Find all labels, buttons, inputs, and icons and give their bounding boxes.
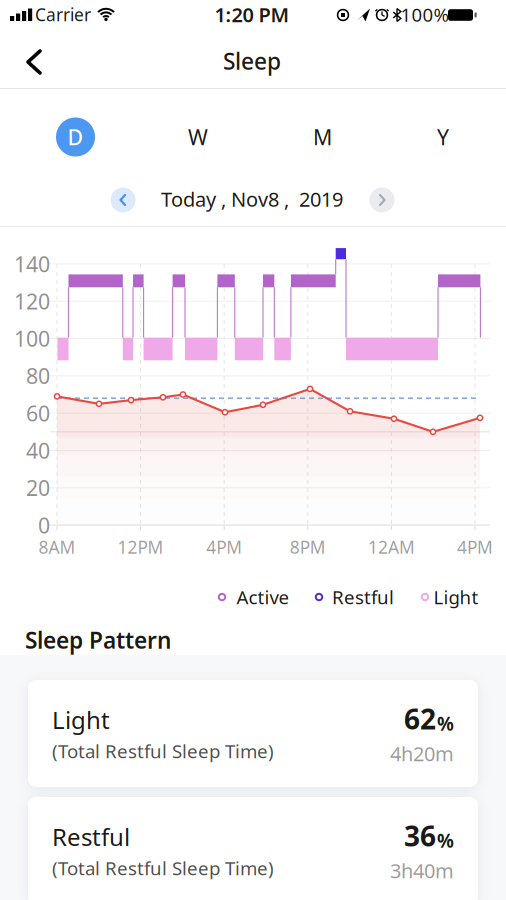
staticText: Carrier (35, 3, 91, 26)
staticText: 100 (14, 324, 50, 353)
staticText: Sleep Pattern (25, 625, 171, 655)
button[interactable]: Light (28, 680, 478, 787)
staticText: 80 (26, 362, 50, 390)
staticText: Light (52, 704, 110, 736)
staticText: 4PM (206, 535, 242, 558)
staticText: (Total Restful Sleep Time) (52, 738, 274, 763)
staticText: 60 (26, 399, 50, 427)
staticText: Active (236, 585, 289, 609)
staticText: Restful (332, 585, 394, 609)
staticText: 62 (404, 700, 436, 737)
button[interactable]: Previous day (110, 187, 135, 212)
button[interactable]: Next day (369, 187, 394, 212)
button[interactable]: Restful (28, 797, 478, 900)
staticText: Today , Nov8 , 2019 (161, 186, 343, 212)
staticText: 4h20m (390, 740, 454, 767)
staticText: 120 (14, 287, 50, 315)
staticText: 36 (404, 817, 436, 854)
staticText: 8AM (38, 535, 75, 558)
staticText: 1:20 PM (214, 1, 289, 28)
staticText: Restful (52, 821, 130, 853)
staticText: 140 (14, 250, 50, 278)
staticText: 12AM (368, 535, 415, 558)
staticText: 100% (400, 2, 449, 27)
button[interactable]: W (173, 117, 223, 157)
staticText: Y (437, 123, 449, 151)
staticText: (Total Restful Sleep Time) (52, 855, 274, 880)
staticText: Sleep (223, 46, 281, 76)
staticText: 20 (26, 474, 50, 502)
staticText: 0 (38, 511, 50, 539)
staticText: % (437, 828, 454, 853)
button[interactable]: D (56, 117, 95, 156)
staticText: D (67, 123, 83, 151)
button[interactable]: M (297, 117, 347, 157)
staticText: 12PM (118, 535, 164, 558)
staticText: % (437, 711, 454, 736)
staticText: 3h40m (390, 857, 454, 884)
staticText: W (188, 123, 208, 151)
staticText: M (313, 123, 332, 151)
button[interactable]: Y (418, 117, 468, 157)
button[interactable]: Back (14, 41, 58, 83)
staticText: 8PM (290, 535, 326, 558)
staticText: 40 (26, 436, 50, 465)
staticText: 4PM (457, 535, 493, 558)
staticText: Light (433, 585, 478, 609)
